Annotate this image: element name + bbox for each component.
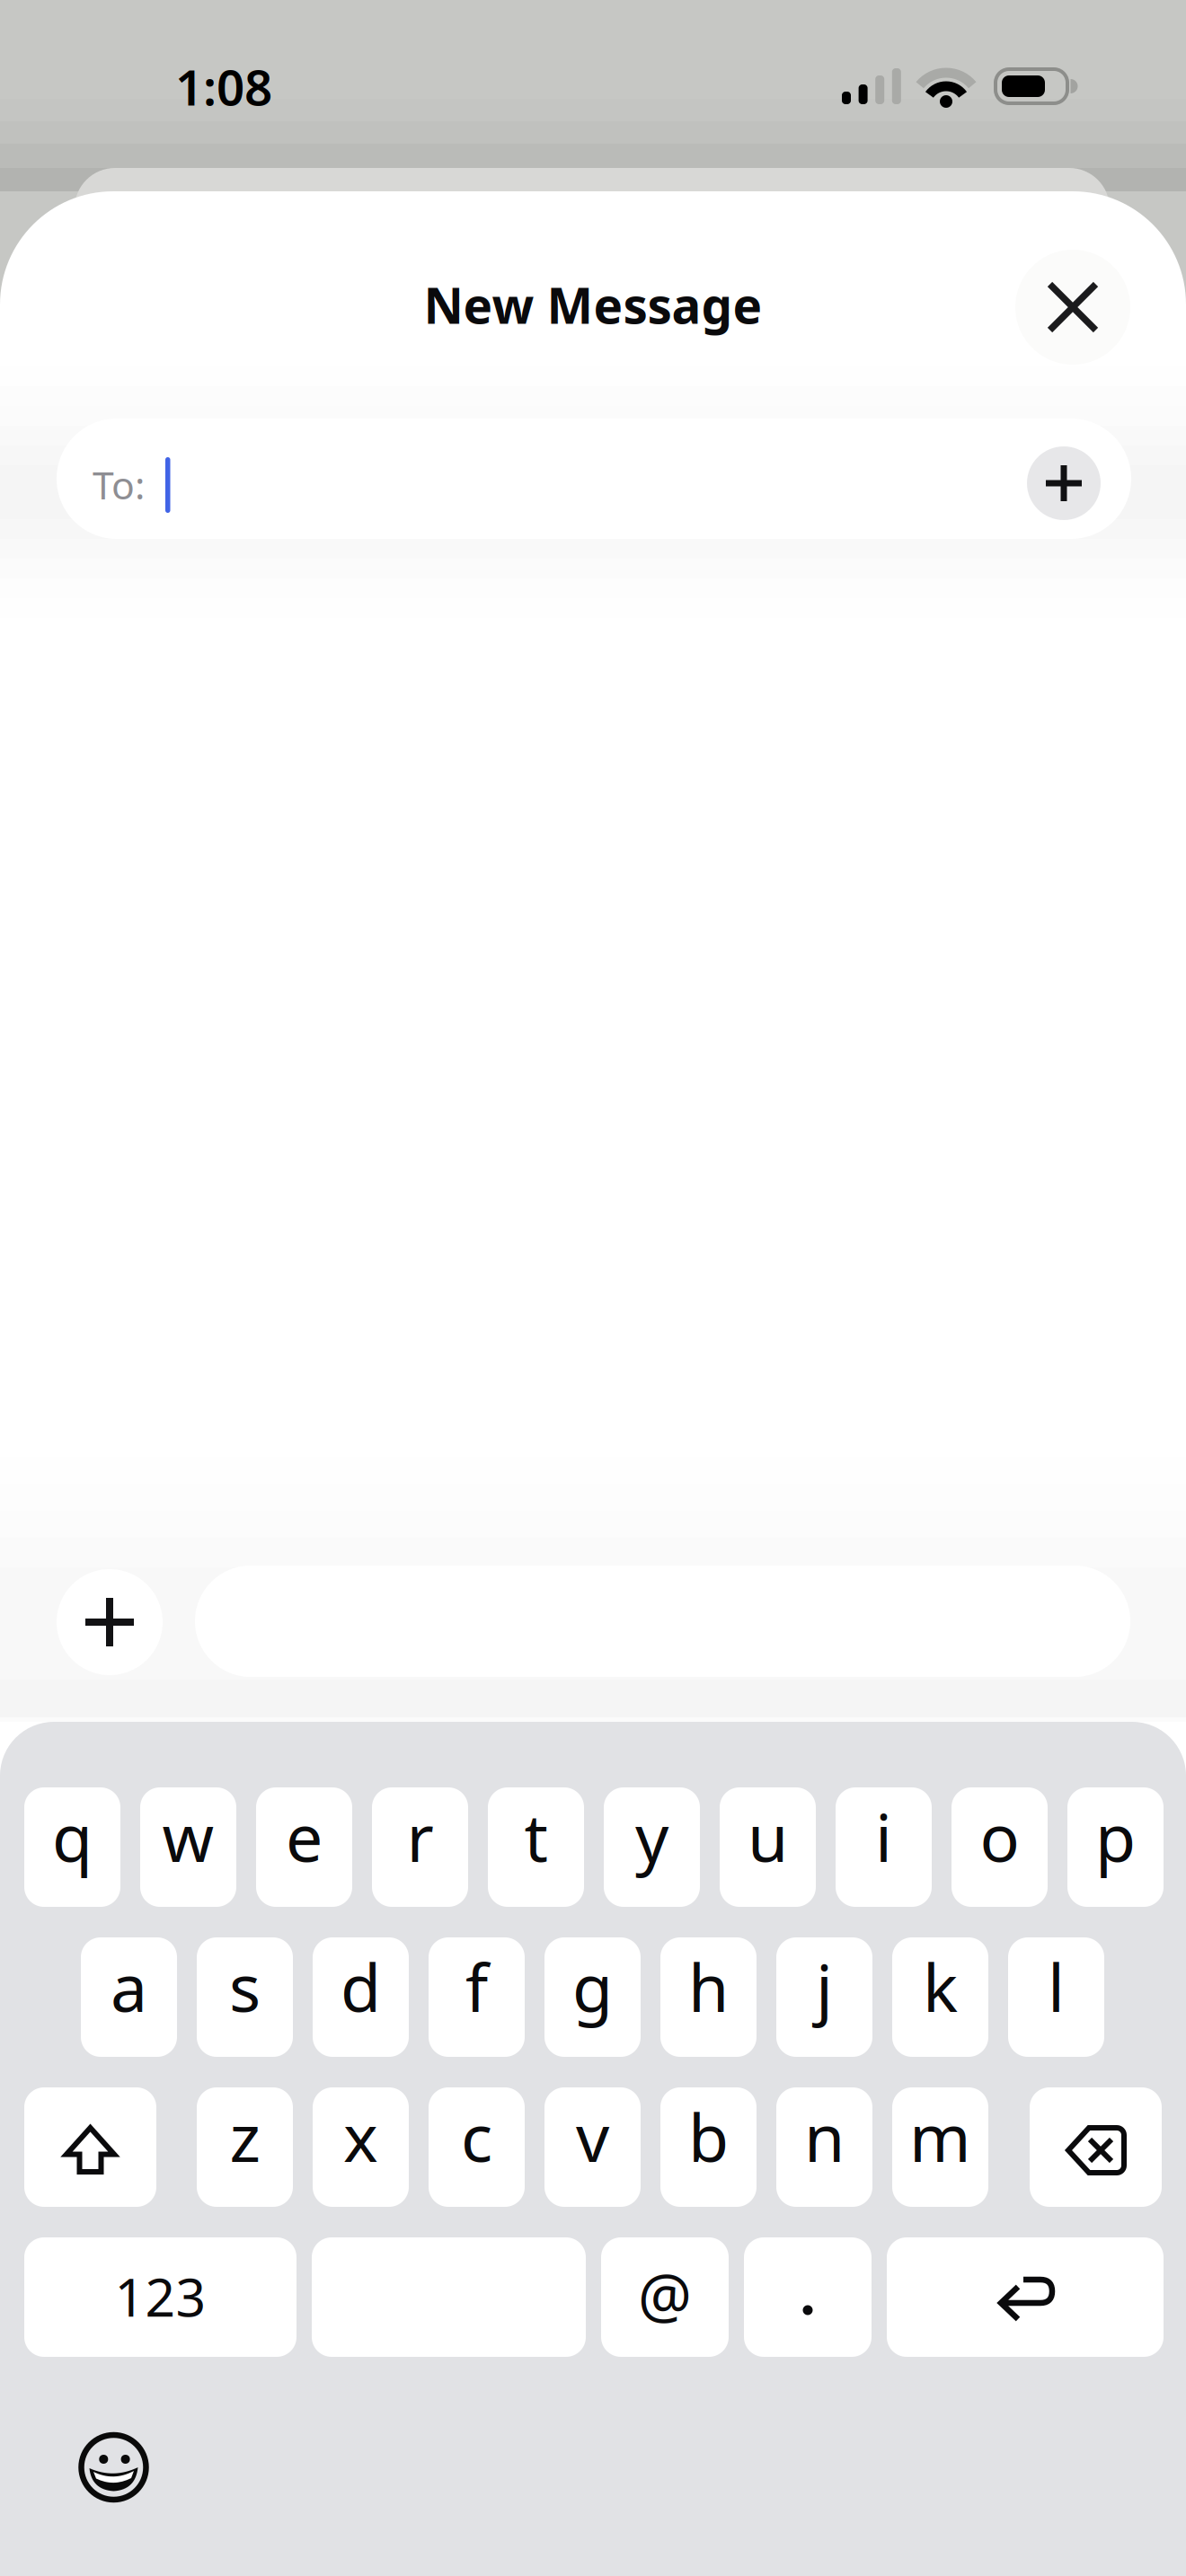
staticText: c: [461, 2093, 492, 2180]
button[interactable]: [312, 2237, 586, 2357]
button[interactable]: b: [660, 2087, 757, 2207]
staticText: q: [52, 1793, 93, 1880]
button[interactable]: r: [372, 1787, 468, 1907]
button[interactable]: 123: [24, 2237, 296, 2357]
button[interactable]: x: [313, 2087, 409, 2207]
staticText: r: [407, 1793, 434, 1880]
button[interactable]: f: [429, 1937, 525, 2057]
button[interactable]: c: [429, 2087, 525, 2207]
staticText: l: [1048, 1943, 1065, 2030]
button[interactable]: m: [892, 2087, 988, 2207]
button[interactable]: [57, 1569, 163, 1675]
button[interactable]: g: [544, 1937, 641, 2057]
staticText: 123: [115, 2261, 206, 2331]
staticText: a: [111, 1943, 147, 2030]
staticText: p: [1095, 1793, 1136, 1880]
staticText: d: [341, 1943, 381, 2030]
staticText: y: [635, 1793, 668, 1880]
button[interactable]: h: [660, 1937, 757, 2057]
button[interactable]: To:: [57, 419, 1131, 539]
button[interactable]: u: [720, 1787, 816, 1907]
button[interactable]: [73, 2427, 155, 2510]
staticText: e: [286, 1793, 323, 1880]
staticText: f: [465, 1943, 488, 2030]
button[interactable]: y: [604, 1787, 700, 1907]
button[interactable]: q: [24, 1787, 120, 1907]
staticText: b: [688, 2093, 729, 2180]
button[interactable]: k: [892, 1937, 988, 2057]
staticText: g: [572, 1943, 613, 2030]
staticText: m: [909, 2093, 971, 2180]
button[interactable]: d: [313, 1937, 409, 2057]
button[interactable]: e: [256, 1787, 352, 1907]
staticText: u: [748, 1793, 788, 1880]
staticText: w: [162, 1793, 214, 1880]
button[interactable]: [744, 2237, 872, 2357]
button[interactable]: l: [1008, 1937, 1104, 2057]
staticText: To:: [93, 459, 145, 510]
staticText: o: [980, 1793, 1019, 1880]
staticText: @: [638, 2255, 692, 2334]
button[interactable]: v: [544, 2087, 641, 2207]
staticText: 1:08: [175, 54, 272, 119]
button[interactable]: o: [951, 1787, 1048, 1907]
staticText: n: [804, 2093, 845, 2180]
button[interactable]: w: [140, 1787, 236, 1907]
staticText: h: [688, 1943, 729, 2030]
staticText: x: [343, 2093, 378, 2180]
button[interactable]: [1015, 250, 1130, 365]
button[interactable]: s: [197, 1937, 293, 2057]
button[interactable]: n: [776, 2087, 872, 2207]
button[interactable]: [887, 2237, 1164, 2357]
staticText: t: [524, 1793, 548, 1880]
button[interactable]: [24, 2087, 156, 2207]
staticText: New Message: [424, 272, 762, 337]
button[interactable]: [1030, 2087, 1162, 2207]
button[interactable]: @: [601, 2237, 729, 2357]
staticText: k: [923, 1943, 958, 2030]
button[interactable]: t: [488, 1787, 584, 1907]
button[interactable]: p: [1067, 1787, 1164, 1907]
button[interactable]: z: [197, 2087, 293, 2207]
button[interactable]: j: [776, 1937, 872, 2057]
staticText: i: [875, 1793, 892, 1880]
staticText: v: [576, 2093, 609, 2180]
button[interactable]: i: [836, 1787, 932, 1907]
staticText: j: [816, 1943, 833, 2030]
button[interactable]: a: [81, 1937, 177, 2057]
staticText: z: [230, 2093, 260, 2180]
staticText: s: [229, 1943, 261, 2030]
